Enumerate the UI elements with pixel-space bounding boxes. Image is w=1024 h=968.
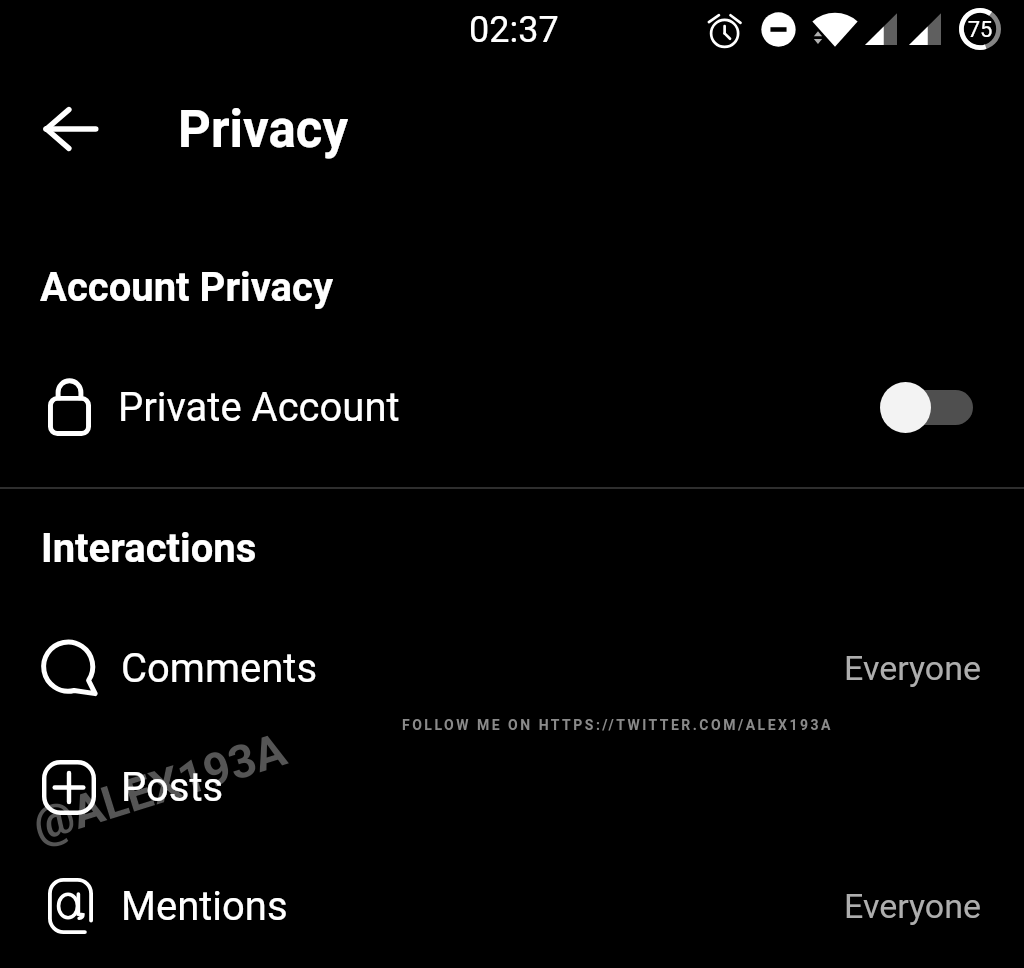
button[interactable]: Posts [0,728,1024,846]
staticText: Interactions [41,525,257,572]
staticText: 02:37 [469,9,559,51]
button[interactable]: Back [22,81,118,177]
staticText: Privacy [178,100,349,160]
staticText: Mentions [121,883,288,930]
staticText: @ALEX193A [26,722,293,852]
button[interactable]: Private Account [0,347,1024,467]
other: Comments [42,641,96,695]
button[interactable]: Private account toggle [880,378,973,436]
staticText: 75 [959,17,1001,43]
button[interactable]: Mentions [0,847,1024,965]
button[interactable]: Comments [0,609,1024,727]
staticText: Account Privacy [40,264,333,311]
staticText: Comments [121,645,318,692]
other: Posts [42,760,96,815]
staticText: Private Account [118,384,400,431]
staticText: Everyone [844,648,982,688]
staticText: Everyone [844,886,982,926]
staticText: FOLLOW ME ON HTTPS://TWITTER.COM/ALEX193… [402,717,834,733]
staticText: Posts [121,764,224,811]
other: Mentions [48,878,93,934]
